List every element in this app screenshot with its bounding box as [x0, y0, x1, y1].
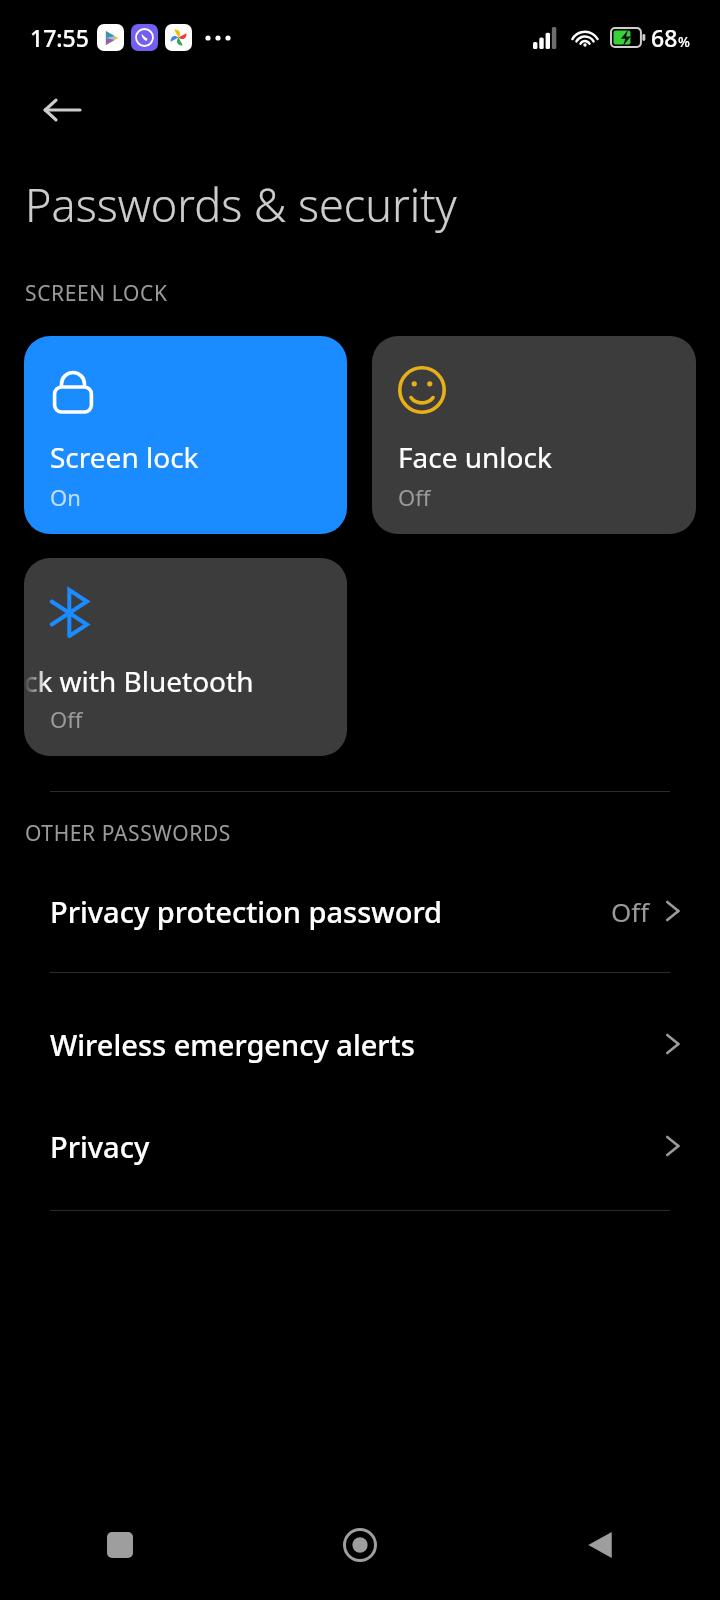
staticText: Wireless emergency alerts — [50, 1025, 415, 1064]
button[interactable]: Face unlock — [372, 336, 696, 534]
staticText: % — [678, 32, 690, 51]
staticText: Passwords & security — [25, 174, 457, 235]
button[interactable]: Back — [480, 1490, 720, 1600]
button[interactable]: Home — [240, 1490, 480, 1600]
button[interactable]: Unlock with Bluetooth device — [24, 558, 347, 756]
button[interactable]: Wireless emergency alerts — [0, 1013, 720, 1075]
button[interactable]: Privacy protection password — [0, 880, 720, 942]
staticText: Face unlock — [398, 438, 552, 476]
staticText: Screen lock — [50, 438, 199, 476]
button[interactable]: Privacy — [0, 1115, 720, 1177]
staticText: Off — [50, 704, 83, 734]
staticText: OTHER PASSWORDS — [25, 819, 231, 848]
staticText: SCREEN LOCK — [25, 279, 168, 308]
button[interactable]: Recent apps — [0, 1490, 240, 1600]
staticText: On — [50, 482, 81, 512]
staticText: Off — [398, 482, 431, 512]
staticText: 68 — [651, 22, 678, 53]
staticText: Off — [611, 894, 650, 929]
button[interactable]: Screen lock — [24, 336, 347, 534]
staticText: 17:55 — [30, 22, 89, 53]
button[interactable]: Back — [26, 74, 98, 146]
staticText: Unlock with Bluetooth device — [24, 662, 285, 698]
staticText: Privacy — [50, 1127, 150, 1166]
staticText: Privacy protection password — [50, 892, 443, 931]
